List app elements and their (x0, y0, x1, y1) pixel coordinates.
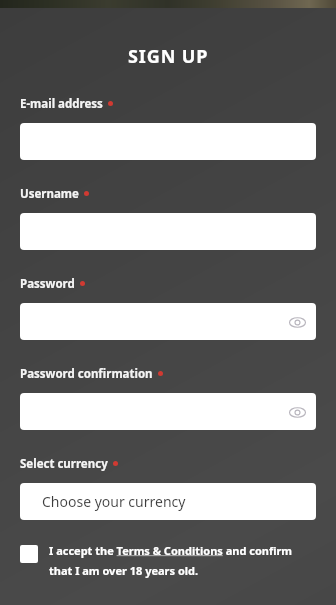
button[interactable]: Show password (20, 303, 316, 340)
button[interactable]: Show password (285, 310, 309, 334)
button[interactable] (20, 123, 316, 160)
button[interactable]: Accept terms and conditions (20, 545, 38, 563)
staticText: Select currency (20, 456, 108, 472)
button[interactable]: Show password (285, 400, 309, 424)
staticText: E-mail address (20, 96, 103, 112)
staticText: Choose your currency (42, 492, 186, 511)
button[interactable]: Show password (20, 393, 316, 430)
staticText: SIGN UP (128, 44, 209, 69)
staticText: I accept the Terms & Conditions and conf… (49, 543, 316, 578)
button[interactable]: Choose your currency (20, 483, 316, 520)
staticText: Password confirmation (20, 366, 153, 382)
staticText: Username (20, 186, 79, 202)
button[interactable] (20, 213, 316, 250)
staticText: Password (20, 276, 75, 292)
button[interactable]: Accept terms and conditions (20, 543, 316, 578)
